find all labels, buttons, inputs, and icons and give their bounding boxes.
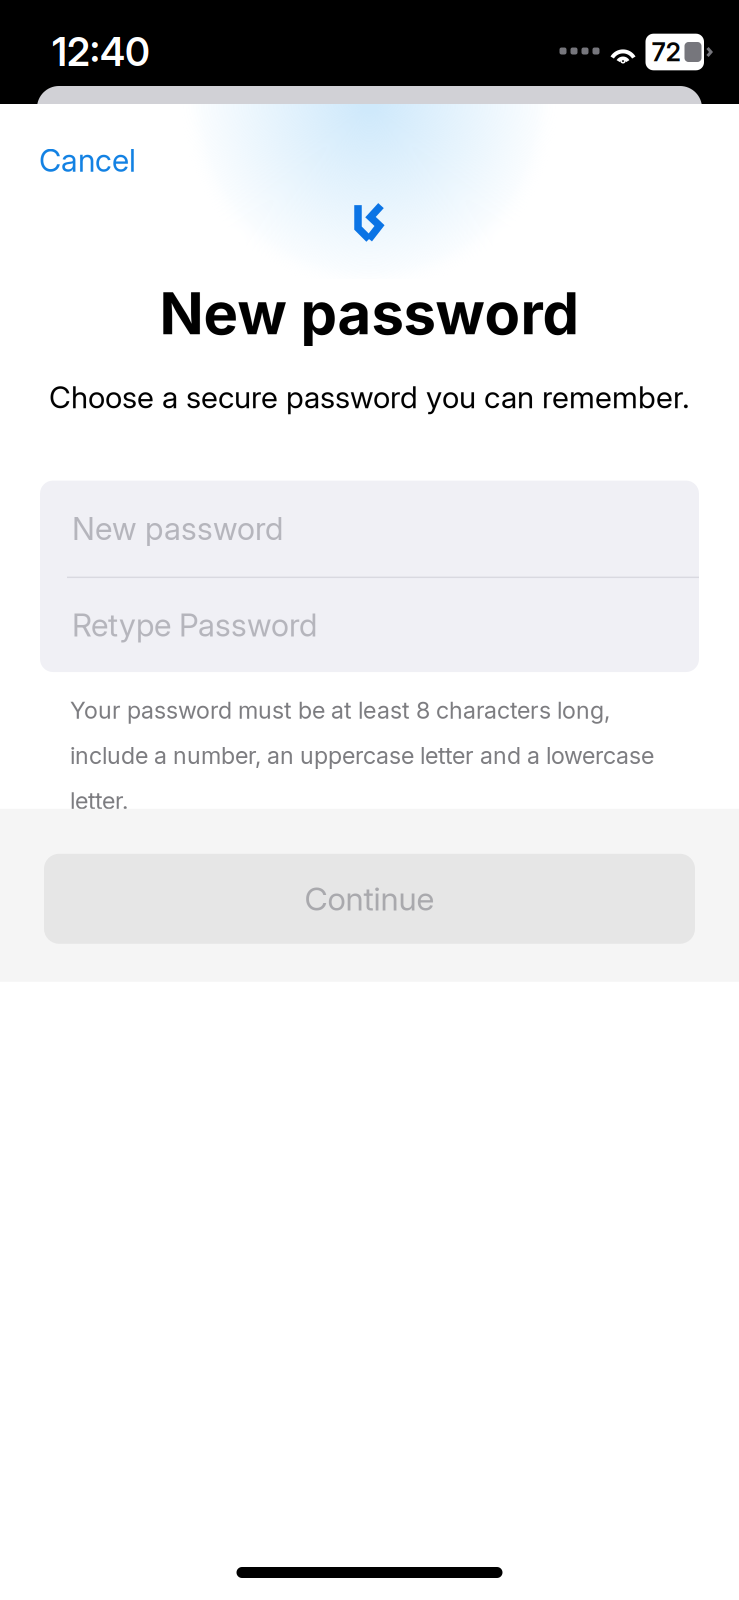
staticText: Choose a secure password you can remembe… [49, 379, 690, 416]
staticText: Cancel [39, 142, 136, 179]
staticText: Continue [304, 879, 434, 918]
button[interactable]: Retype Password [40, 578, 699, 672]
staticText: 12:40 [52, 29, 150, 75]
staticText: Retype Password [72, 606, 317, 644]
staticText: New password [72, 510, 283, 547]
staticText: 72 [651, 37, 681, 67]
button[interactable]: New password [40, 481, 699, 577]
button[interactable]: Continue [44, 854, 695, 944]
button[interactable]: Cancel [0, 131, 175, 190]
staticText: New password [159, 278, 579, 348]
staticText: Your password must be at least 8 charact… [70, 696, 654, 815]
